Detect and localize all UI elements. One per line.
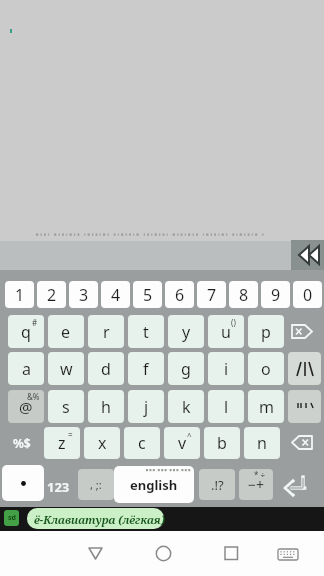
staticText: o xyxy=(261,358,271,380)
button[interactable] xyxy=(282,474,308,498)
button[interactable]: 1 xyxy=(5,281,34,308)
staticText: p xyxy=(261,321,271,343)
button[interactable]: r xyxy=(88,315,124,348)
staticText: f xyxy=(143,358,149,380)
button[interactable]: a xyxy=(8,352,44,385)
button[interactable] xyxy=(88,547,103,560)
button[interactable]: w xyxy=(48,352,84,385)
button[interactable] xyxy=(291,435,313,450)
staticText: 9 xyxy=(271,284,281,306)
button[interactable]: , ;: xyxy=(78,469,114,500)
button[interactable]: e xyxy=(48,315,84,348)
button[interactable] xyxy=(291,324,313,339)
staticText: , ;: xyxy=(90,477,102,492)
staticText: z xyxy=(58,432,66,454)
staticText: b xyxy=(217,432,227,454)
button[interactable] xyxy=(2,465,44,501)
button[interactable] xyxy=(277,548,299,561)
staticText: n xyxy=(257,432,267,454)
staticText: q xyxy=(21,321,31,343)
button[interactable]: 8 xyxy=(229,281,258,308)
staticText: h xyxy=(101,396,111,418)
button[interactable]: x xyxy=(84,427,120,459)
button[interactable]: g xyxy=(168,352,204,385)
staticText: %$ xyxy=(13,435,31,451)
button[interactable]: i xyxy=(208,352,244,385)
button[interactable]: u xyxy=(208,315,244,348)
staticText: 3 xyxy=(79,284,89,306)
staticText: d xyxy=(101,358,111,380)
button[interactable]: @ xyxy=(8,390,44,423)
button[interactable]: s xyxy=(48,390,84,423)
button[interactable]: english xyxy=(114,466,194,503)
button[interactable]: 7 xyxy=(197,281,226,308)
button[interactable]: −+ xyxy=(239,469,273,500)
staticText: w xyxy=(60,358,73,380)
button[interactable]: 5 xyxy=(133,281,162,308)
button[interactable]: 3 xyxy=(69,281,98,308)
staticText: 2 xyxy=(47,284,57,306)
staticText: x xyxy=(98,432,107,454)
button[interactable]: l xyxy=(208,390,244,423)
button[interactable]: o xyxy=(248,352,284,385)
staticText: l xyxy=(224,396,229,418)
button[interactable]: sd xyxy=(4,510,19,526)
staticText: c xyxy=(138,432,146,454)
staticText: g xyxy=(181,358,191,380)
staticText: sd xyxy=(8,513,16,523)
staticText: v xyxy=(178,432,187,454)
staticText: 5 xyxy=(143,284,153,306)
staticText: a xyxy=(22,358,31,380)
staticText: 0 xyxy=(303,284,313,306)
button[interactable]: v xyxy=(164,427,200,459)
staticText: @ xyxy=(19,397,33,417)
staticText: # xyxy=(32,317,38,328)
staticText: 8 xyxy=(239,284,249,306)
button[interactable] xyxy=(224,546,239,561)
button[interactable]: b xyxy=(204,427,240,459)
staticText: () xyxy=(231,317,236,328)
button[interactable]: q xyxy=(8,315,44,348)
staticText: .!? xyxy=(211,476,224,494)
button[interactable]: 0 xyxy=(293,281,322,308)
button[interactable]: n xyxy=(244,427,280,459)
staticText: ^ xyxy=(187,430,192,441)
button[interactable] xyxy=(288,390,321,423)
button[interactable]: 123 xyxy=(47,478,70,496)
button[interactable]: 4 xyxy=(101,281,130,308)
button[interactable]: c xyxy=(124,427,160,459)
button[interactable] xyxy=(288,352,321,385)
button[interactable]: m xyxy=(248,390,284,423)
button[interactable]: 6 xyxy=(165,281,194,308)
button[interactable]: j xyxy=(128,390,164,423)
button[interactable]: y xyxy=(168,315,204,348)
staticText: s xyxy=(62,396,70,418)
button[interactable]: .!? xyxy=(199,469,235,500)
button[interactable]: z xyxy=(44,427,80,459)
staticText: y xyxy=(182,321,191,343)
button[interactable]: p xyxy=(248,315,284,348)
staticText: u xyxy=(221,321,231,343)
button[interactable]: k xyxy=(168,390,204,423)
staticText: t xyxy=(143,321,149,343)
staticText: j xyxy=(144,396,149,418)
staticText: &% xyxy=(27,391,40,402)
button[interactable]: d xyxy=(88,352,124,385)
staticText: english xyxy=(130,476,178,494)
staticText: m xyxy=(259,396,274,418)
button[interactable]: 2 xyxy=(37,281,66,308)
staticText: 4 xyxy=(111,284,121,306)
staticText: 6 xyxy=(175,284,185,306)
button[interactable] xyxy=(155,545,172,562)
button[interactable] xyxy=(291,240,324,270)
button[interactable]: f xyxy=(128,352,164,385)
button[interactable]: 9 xyxy=(261,281,290,308)
button[interactable]: h xyxy=(88,390,124,423)
staticText: = xyxy=(68,429,73,440)
button[interactable]: t xyxy=(128,315,164,348)
staticText: −+ xyxy=(248,475,265,494)
staticText: * ÷ xyxy=(254,469,266,480)
staticText: e xyxy=(61,321,71,343)
staticText: i xyxy=(224,358,229,380)
staticText: k xyxy=(182,396,191,418)
